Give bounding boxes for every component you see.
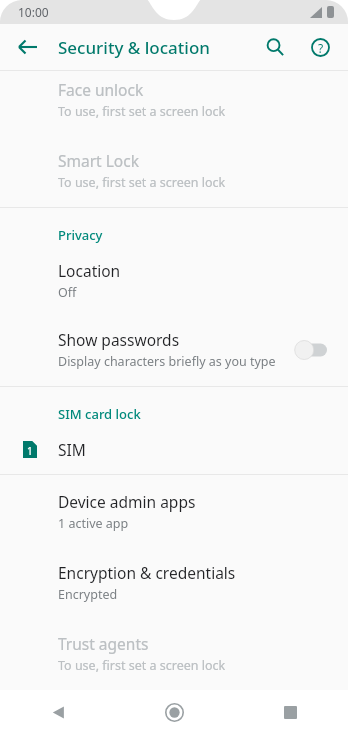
button[interactable]: 1 bbox=[0, 429, 348, 474]
button[interactable]: Home bbox=[116, 690, 232, 734]
button[interactable]: Show passwords bbox=[0, 315, 348, 386]
staticText: 1 active app bbox=[58, 515, 129, 532]
staticText: To use, first set a screen lock bbox=[58, 174, 226, 191]
staticText: 1 bbox=[27, 444, 33, 458]
button[interactable]: Recent apps bbox=[232, 690, 348, 734]
staticText: ? bbox=[318, 40, 324, 56]
staticText: 10:00 bbox=[18, 4, 49, 20]
staticText: Face unlock bbox=[58, 79, 144, 100]
button[interactable]: Help bbox=[300, 27, 340, 67]
button[interactable]: Back bbox=[0, 690, 116, 734]
button[interactable]: Trust agents bbox=[0, 619, 348, 690]
staticText: Security & location bbox=[58, 36, 210, 59]
staticText: SIM bbox=[58, 439, 86, 460]
staticText: Off bbox=[58, 284, 77, 301]
staticText: Encrypted bbox=[58, 586, 118, 603]
button[interactable]: Location bbox=[0, 250, 348, 315]
staticText: Smart Lock bbox=[58, 150, 139, 171]
staticText: Display characters briefly as you type bbox=[58, 353, 276, 370]
button[interactable]: Face unlock bbox=[0, 71, 348, 136]
staticText: SIM card lock bbox=[58, 405, 141, 423]
staticText: Show passwords bbox=[58, 329, 180, 350]
staticText: Privacy bbox=[58, 226, 103, 244]
staticText: Trust agents bbox=[58, 633, 149, 654]
staticText: To use, first set a screen lock bbox=[58, 657, 226, 674]
button[interactable]: Device admin apps bbox=[0, 475, 348, 548]
button[interactable]: Encryption & credentials bbox=[0, 548, 348, 619]
button[interactable]: Smart Lock bbox=[0, 136, 348, 207]
staticText: Encryption & credentials bbox=[58, 562, 236, 583]
button[interactable]: Search bbox=[255, 27, 295, 67]
button[interactable]: Show passwords toggle bbox=[288, 336, 334, 364]
staticText: Location bbox=[58, 260, 121, 281]
staticText: To use, first set a screen lock bbox=[58, 103, 226, 120]
staticText: Device admin apps bbox=[58, 491, 196, 512]
button[interactable]: Back bbox=[8, 27, 48, 67]
